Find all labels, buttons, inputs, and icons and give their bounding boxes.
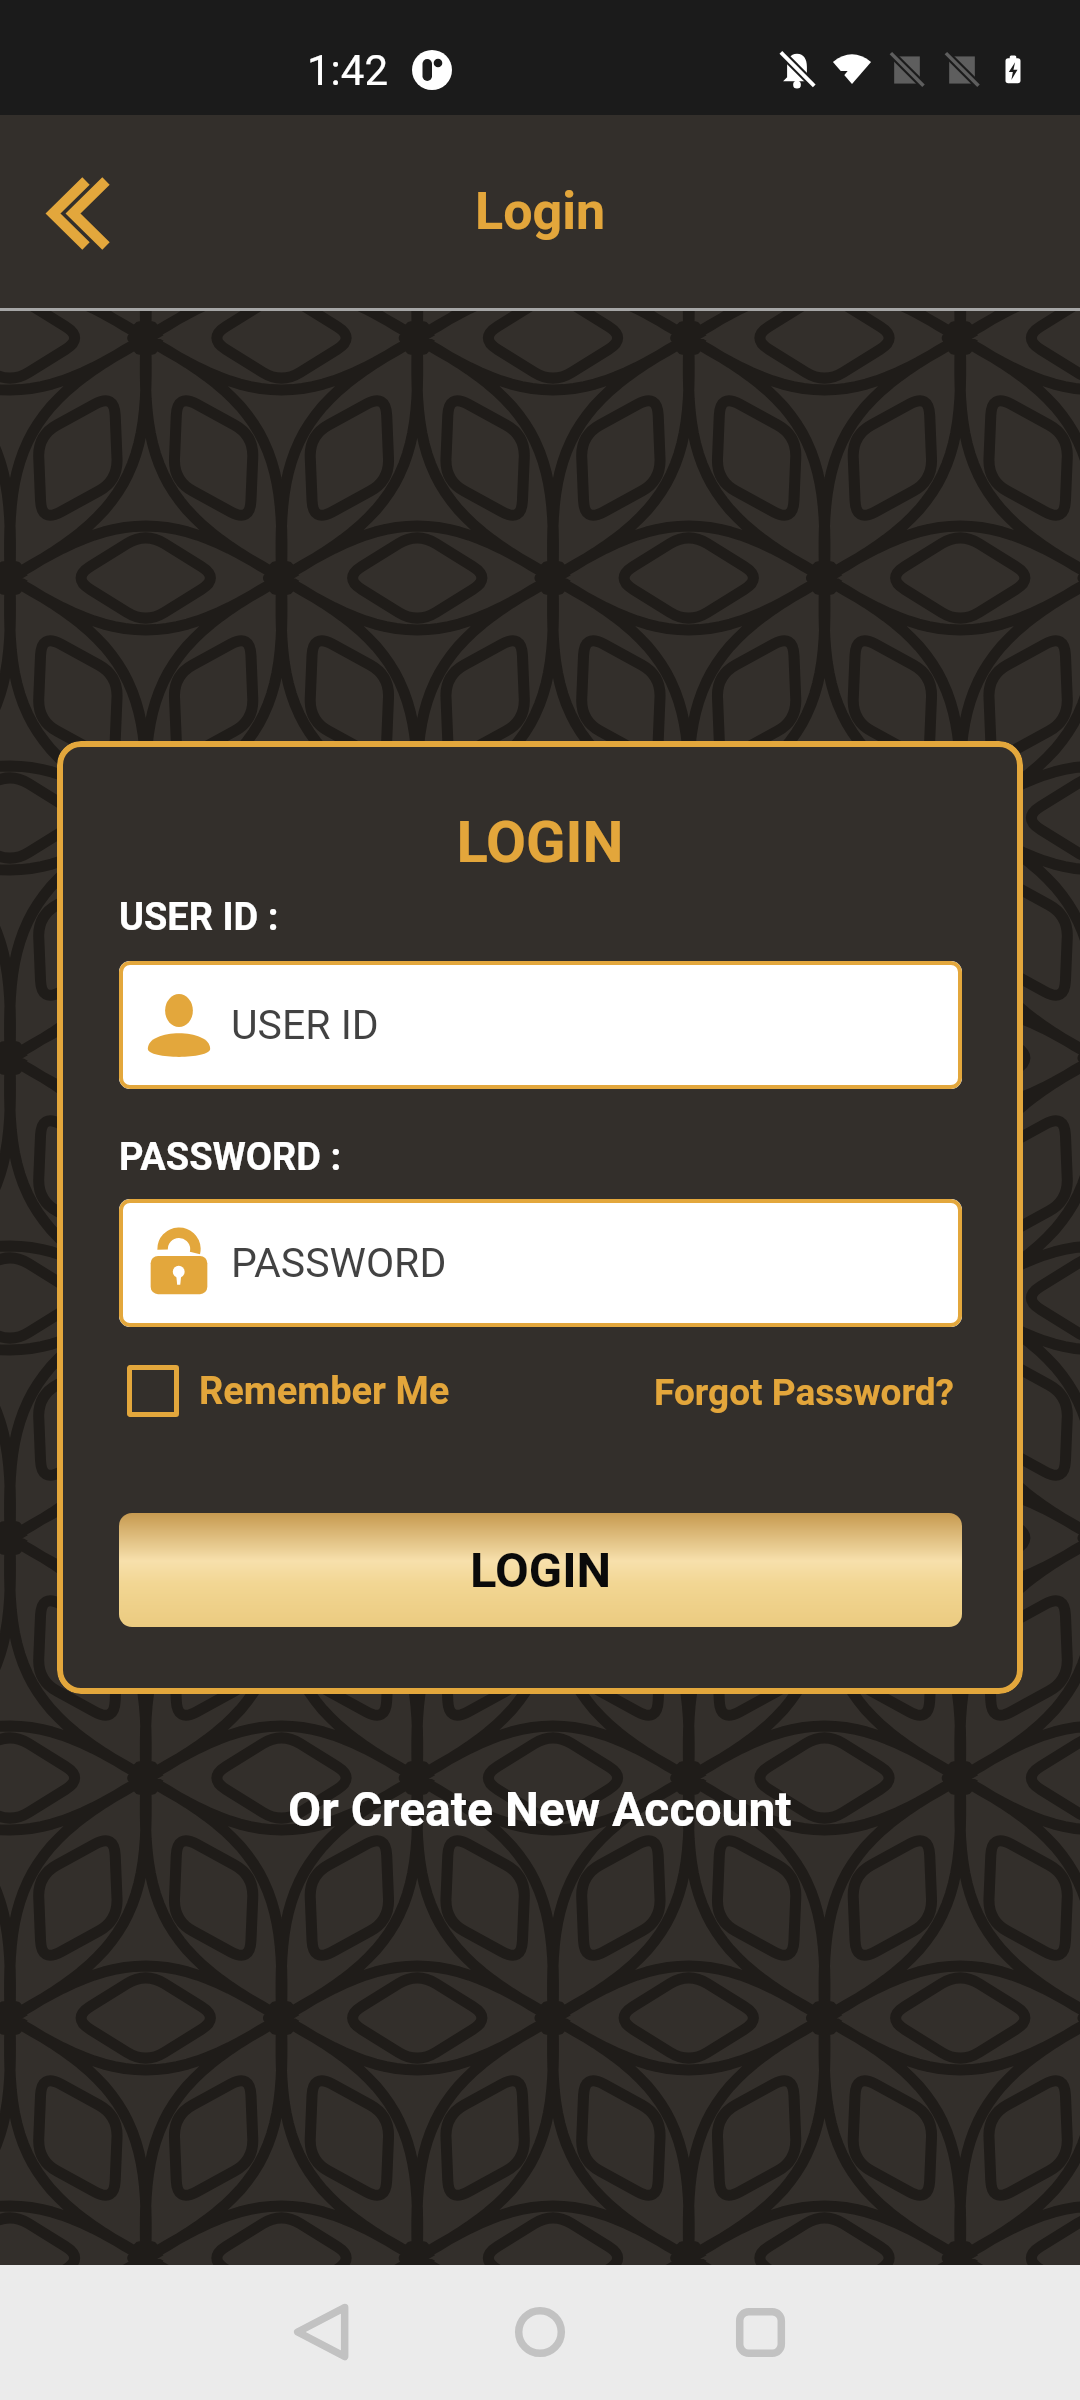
button[interactable]: Recents: [700, 2272, 820, 2392]
staticText: Login: [475, 181, 606, 242]
staticText: 1:42: [307, 46, 388, 95]
staticText: PASSWORD :: [119, 1135, 342, 1180]
button[interactable]: Home: [480, 2272, 600, 2392]
button[interactable]: Back: [262, 2272, 382, 2392]
button[interactable]: USER ID: [119, 961, 962, 1089]
staticText: LOGIN: [57, 808, 1023, 876]
staticText: Remember Me: [199, 1369, 450, 1414]
button[interactable]: PASSWORD: [119, 1199, 962, 1327]
button[interactable]: LOGIN: [119, 1513, 962, 1627]
button[interactable]: Remember Me: [127, 1365, 450, 1417]
staticText: PASSWORD: [231, 1239, 447, 1287]
staticText: USER ID :: [119, 895, 279, 940]
staticText: Or Create New Account: [288, 1781, 792, 1837]
staticText: USER ID: [231, 1001, 379, 1049]
button[interactable]: Forgot Password?: [654, 1371, 954, 1414]
staticText: LOGIN: [470, 1542, 612, 1599]
staticText: Forgot Password?: [654, 1371, 954, 1414]
button[interactable]: Back: [0, 134, 156, 290]
button[interactable]: Or Create New Account: [0, 1781, 1080, 1837]
